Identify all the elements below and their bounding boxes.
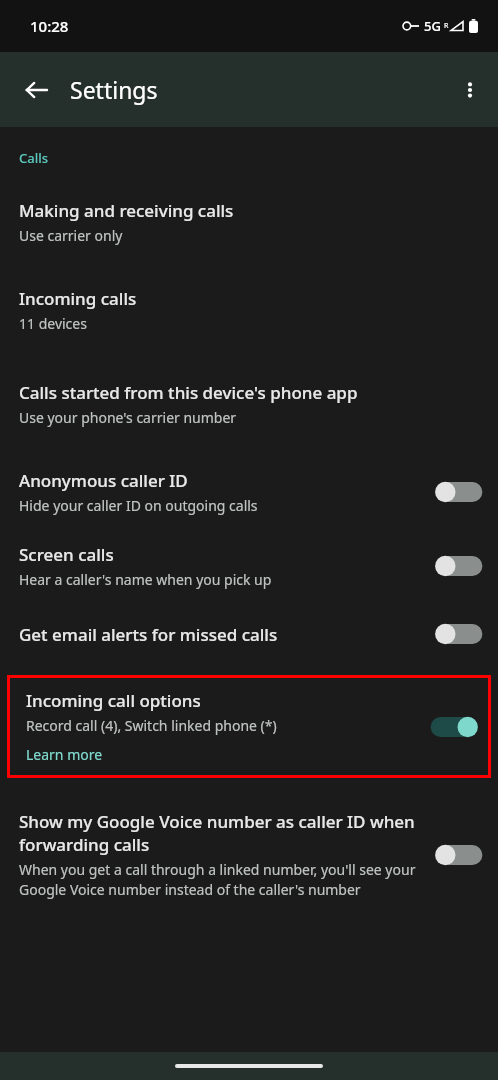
- staticText: Settings: [70, 74, 158, 105]
- button[interactable]: Screen calls: [0, 529, 498, 603]
- button[interactable]: Anonymous caller ID: [0, 455, 498, 529]
- staticText: 5G: [424, 17, 441, 35]
- button[interactable]: Show my Google Voice number as caller ID…: [0, 796, 498, 913]
- staticText: 11 devices: [19, 314, 87, 333]
- staticText: 10:28: [30, 16, 69, 36]
- staticText: Hide your caller ID on outgoing calls: [19, 496, 258, 515]
- button[interactable]: Incoming call options: [7, 675, 491, 778]
- button[interactable]: Toggle on: [427, 710, 479, 744]
- staticText: Use carrier only: [19, 226, 123, 245]
- staticText: Show my Google Voice number as caller ID…: [19, 810, 426, 856]
- button[interactable]: Incoming calls: [0, 273, 498, 347]
- staticText: Making and receiving calls: [19, 199, 234, 222]
- staticText: Get email alerts for missed calls: [19, 623, 278, 646]
- button[interactable]: More options: [448, 68, 492, 112]
- button[interactable]: Calls started from this device's phone a…: [0, 367, 498, 441]
- staticText: Record call (4), Switch linked phone (*): [26, 716, 277, 735]
- button[interactable]: Making and receiving calls: [0, 185, 498, 259]
- staticText: Screen calls: [19, 543, 114, 566]
- staticText: Use your phone's carrier number: [19, 408, 237, 427]
- button[interactable]: Toggle off: [434, 617, 486, 651]
- staticText: Incoming call options: [26, 689, 201, 712]
- staticText: Hear a caller's name when you pick up: [19, 570, 272, 589]
- staticText: Learn more: [26, 745, 103, 764]
- button[interactable]: Back: [14, 68, 58, 112]
- button[interactable]: Toggle off: [434, 838, 486, 872]
- button[interactable]: Get email alerts for missed calls: [0, 603, 498, 665]
- staticText: Calls started from this device's phone a…: [19, 381, 358, 404]
- button[interactable]: Learn more: [26, 745, 103, 764]
- staticText: Anonymous caller ID: [19, 469, 188, 492]
- staticText: Calls: [19, 149, 49, 167]
- staticText: R: [444, 21, 449, 31]
- button[interactable]: Toggle off: [434, 549, 486, 583]
- staticText: Incoming calls: [19, 287, 137, 310]
- button[interactable]: Toggle off: [434, 475, 486, 509]
- staticText: When you get a call through a linked num…: [19, 860, 426, 899]
